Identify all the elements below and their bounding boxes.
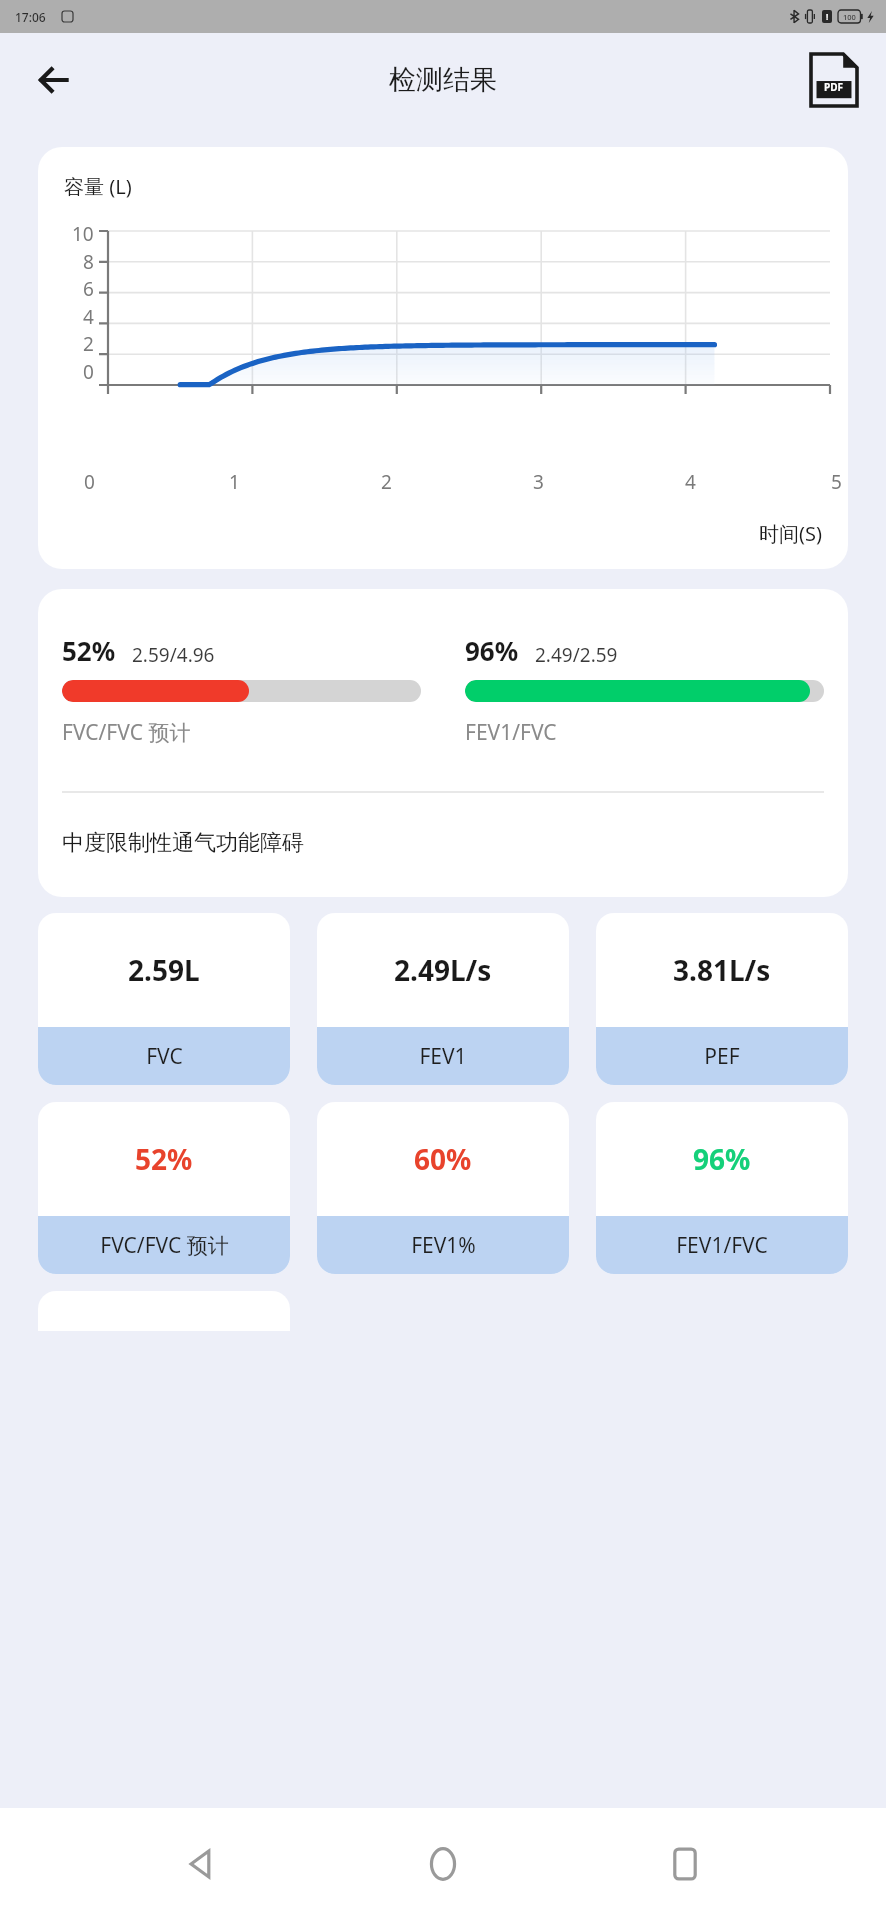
staticText: PDF	[824, 80, 844, 94]
staticText: FVC/FVC 预计	[100, 1231, 229, 1260]
button[interactable]: Back	[26, 52, 82, 108]
button[interactable]: 52%	[38, 589, 848, 897]
staticText: PEF	[704, 1042, 740, 1071]
staticText: 96%	[465, 633, 519, 668]
staticText: 60%	[414, 1140, 472, 1178]
button[interactable]: 容量 (L)	[38, 147, 848, 569]
staticText: 52%	[135, 1140, 193, 1178]
staticText: FVC/FVC 预计	[62, 718, 191, 747]
staticText: 1	[229, 469, 240, 495]
button[interactable]: 60%	[317, 1102, 569, 1274]
staticText: 4	[83, 304, 94, 330]
staticText: FEV1/FVC	[465, 718, 557, 747]
button[interactable]: Export PDF	[804, 50, 864, 110]
button[interactable]: Recents	[645, 1824, 725, 1904]
staticText: 2.49L/s	[394, 951, 492, 989]
staticText: 8	[83, 249, 94, 275]
staticText: 时间(S)	[759, 520, 822, 547]
staticText: 17:06	[15, 9, 46, 25]
staticText: 100	[843, 12, 856, 22]
staticText: 10	[72, 221, 94, 247]
staticText: FEV1	[419, 1042, 467, 1071]
staticText: FEV1%	[411, 1231, 476, 1260]
staticText: 2.49/2.59	[535, 642, 618, 668]
staticText: 检测结果	[389, 63, 497, 97]
button[interactable]: 2.49L/s	[317, 913, 569, 1085]
staticText: 5	[831, 469, 842, 495]
staticText: 0	[83, 359, 94, 385]
staticText: 4	[685, 469, 696, 495]
staticText: 3	[533, 469, 544, 495]
button[interactable]: Back	[162, 1824, 242, 1904]
button[interactable]: 2.59L	[38, 913, 290, 1085]
staticText: 中度限制性通气功能障碍	[62, 829, 304, 857]
staticText: FVC	[146, 1042, 183, 1071]
staticText: 2.59L	[128, 951, 200, 989]
button[interactable]: 96%	[596, 1102, 848, 1274]
staticText: 52%	[62, 633, 116, 668]
staticText: !	[826, 11, 829, 22]
staticText: 2	[83, 331, 94, 357]
staticText: 96%	[693, 1140, 751, 1178]
staticText: 0	[84, 469, 95, 495]
staticText: 3.81L/s	[673, 951, 771, 989]
staticText: 2.59/4.96	[132, 642, 215, 668]
staticText: 6	[83, 276, 94, 302]
button[interactable]: 3.81L/s	[596, 913, 848, 1085]
button[interactable]: 52%	[38, 1102, 290, 1274]
staticText: FEV1/FVC	[676, 1231, 768, 1260]
staticText: 容量 (L)	[64, 173, 132, 200]
staticText: 2	[381, 469, 392, 495]
button[interactable]: Home	[403, 1824, 483, 1904]
